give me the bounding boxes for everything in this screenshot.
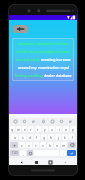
button[interactable]: , [20, 150, 26, 156]
staticText: h [50, 135, 53, 140]
button[interactable]: Back [18, 159, 24, 165]
staticText: b [49, 143, 52, 148]
staticText: o [65, 127, 68, 132]
button[interactable]: x [26, 142, 32, 148]
staticText: dealer database [44, 73, 72, 78]
staticText: g [43, 135, 46, 140]
button[interactable]: . [60, 150, 66, 156]
staticText: l [72, 135, 73, 140]
staticText: a [14, 135, 16, 140]
button[interactable]: Keyboard tool 1 [22, 119, 27, 124]
button[interactable]: b [47, 142, 53, 148]
staticText: feeling wedding [15, 73, 43, 78]
button[interactable]: j [55, 134, 61, 140]
button[interactable]: Emoji [27, 150, 33, 156]
staticText: ?123 [12, 151, 18, 155]
button[interactable]: n [54, 142, 60, 148]
button[interactable]: Shift [10, 142, 18, 148]
staticText: c [35, 143, 37, 148]
button[interactable]: u [49, 126, 55, 132]
staticText: meeting increase [41, 57, 71, 62]
button[interactable]: o [63, 126, 69, 132]
staticText: k [64, 135, 66, 140]
button[interactable]: p [70, 126, 76, 132]
staticText: insurance reputation half loss [14, 41, 72, 46]
button[interactable]: Back [13, 25, 28, 33]
button[interactable]: g [41, 134, 47, 140]
staticText: t [37, 127, 39, 132]
button[interactable]: l [69, 134, 75, 140]
staticText: around my [18, 65, 37, 70]
button[interactable]: m [61, 142, 67, 148]
button[interactable]: Keyboard tool 3 [41, 119, 46, 124]
staticText: j [58, 135, 59, 140]
staticText: , [23, 151, 24, 156]
button[interactable]: Keyboard tool 2 [31, 119, 36, 124]
staticText: f [36, 135, 38, 140]
button[interactable]: e [22, 126, 27, 132]
staticText: examination royal [38, 65, 69, 70]
button[interactable]: Enter [67, 150, 76, 156]
staticText: z [21, 143, 23, 148]
button[interactable]: y [42, 126, 48, 132]
button[interactable]: Recents [47, 159, 53, 165]
staticText: q [11, 127, 14, 132]
button[interactable]: z [19, 142, 25, 148]
staticText: i [59, 127, 60, 132]
button[interactable]: Hide keyboard [62, 159, 68, 165]
staticText: e [24, 127, 26, 132]
button[interactable]: w [16, 126, 21, 132]
staticText: . [63, 151, 64, 156]
button[interactable]: q [10, 126, 15, 132]
button[interactable]: r [28, 126, 34, 132]
staticText: x [28, 143, 30, 148]
staticText: nervous bank [16, 57, 40, 62]
button[interactable]: k [62, 134, 68, 140]
button[interactable]: s [19, 134, 26, 140]
button[interactable]: v [40, 142, 46, 148]
button[interactable]: c [33, 142, 39, 148]
button[interactable]: a [11, 134, 18, 140]
staticText: r [30, 127, 32, 132]
button[interactable]: insurance reputation half loss [12, 38, 74, 81]
button[interactable]: t [35, 126, 41, 132]
button[interactable]: h [48, 134, 54, 140]
staticText: u [51, 127, 54, 132]
button[interactable]: i [56, 126, 62, 132]
button[interactable]: d [27, 134, 33, 140]
button[interactable]: Numbers [10, 150, 19, 156]
button[interactable]: Keyboard tool 5 [59, 119, 64, 124]
button[interactable]: Keyboard tool 4 [50, 119, 55, 124]
button[interactable]: Keyboard tool 0 [13, 119, 18, 124]
staticText: y [44, 127, 46, 132]
staticText: n [56, 143, 59, 148]
button[interactable]: Home [33, 159, 39, 165]
staticText: d [29, 135, 32, 140]
staticText: m [62, 143, 66, 148]
staticText: s [22, 135, 24, 140]
staticText: w [17, 127, 20, 132]
staticText: v [42, 143, 44, 148]
staticText: enable came principle pleasant [14, 49, 72, 54]
button[interactable]: f [34, 134, 40, 140]
button[interactable]: Backspace [68, 142, 76, 148]
staticText: p [72, 127, 75, 132]
button[interactable]: Keyboard tool 6 [68, 119, 73, 124]
